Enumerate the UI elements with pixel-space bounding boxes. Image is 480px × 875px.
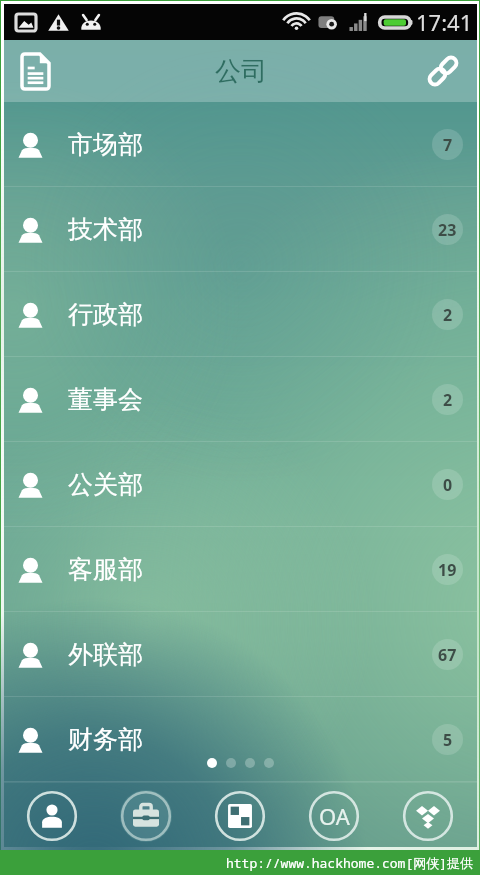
button[interactable]: 市场部 (4, 102, 477, 187)
staticText: 23 (438, 219, 457, 241)
staticText: 外联部 (68, 639, 143, 670)
staticText: 0 (443, 474, 453, 496)
staticText: 67 (438, 644, 457, 666)
button[interactable]: Work (120, 790, 172, 842)
button[interactable]: 技术部 (4, 187, 477, 272)
button[interactable]: OA (308, 790, 360, 842)
button[interactable]: Documents (4, 40, 66, 102)
button[interactable]: 行政部 (4, 272, 477, 357)
staticText: 市场部 (68, 129, 143, 160)
button[interactable]: 公关部 (4, 442, 477, 527)
button[interactable]: Files (402, 790, 454, 842)
button[interactable]: 董事会 (4, 357, 477, 442)
button[interactable]: Apps (214, 790, 266, 842)
staticText: 董事会 (68, 384, 143, 415)
staticText: 技术部 (68, 214, 143, 245)
button[interactable]: 财务部 (4, 697, 477, 782)
staticText: 公关部 (68, 469, 143, 500)
staticText: http://www.hackhome.com[网侠]提供 (226, 854, 474, 872)
staticText: 19 (438, 559, 457, 581)
staticText: 客服部 (68, 554, 143, 585)
button[interactable]: 客服部 (4, 527, 477, 612)
staticText: 5 (443, 729, 453, 751)
staticText: 17:41 (416, 7, 473, 37)
button[interactable]: Link (409, 40, 477, 102)
staticText: 7 (443, 134, 453, 156)
staticText: 财务部 (68, 724, 143, 755)
staticText: 公司 (215, 55, 267, 88)
button[interactable]: 外联部 (4, 612, 477, 697)
staticText: 2 (443, 389, 453, 411)
button[interactable]: Contacts (26, 790, 78, 842)
staticText: 2 (443, 304, 453, 326)
staticText: OA (319, 801, 350, 831)
staticText: 行政部 (68, 299, 143, 330)
